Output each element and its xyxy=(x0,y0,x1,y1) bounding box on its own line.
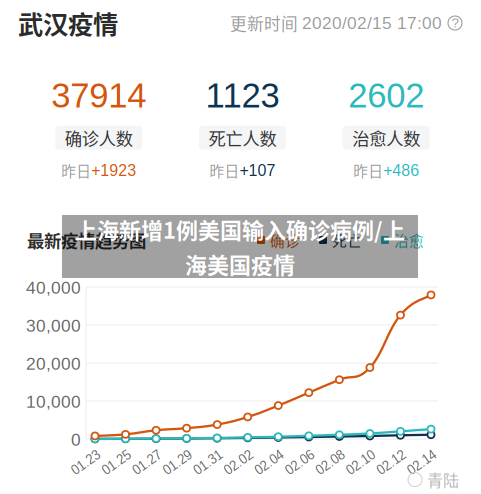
button[interactable]: 37914 xyxy=(51,76,146,181)
staticText: 武汉疫情 xyxy=(18,5,118,41)
staticText: 更新时间 xyxy=(230,11,298,35)
staticText: 37914 xyxy=(51,76,146,115)
button[interactable]: 1123 xyxy=(199,76,286,181)
staticText: 2020/02/15 17:00 xyxy=(302,13,442,33)
staticText: 昨日 xyxy=(209,160,239,181)
staticText: 海美国疫情 xyxy=(185,248,295,280)
staticText: 20,000 xyxy=(26,354,81,373)
staticText: 01.27 xyxy=(131,456,163,470)
staticText: 02.14 xyxy=(406,456,438,470)
staticText: 02.04 xyxy=(253,456,285,470)
staticText: 02.02 xyxy=(223,456,255,470)
button[interactable]: 武汉疫情 xyxy=(18,5,118,41)
staticText: +486 xyxy=(383,161,419,179)
staticText: 01.29 xyxy=(162,456,194,470)
staticText: 昨日 xyxy=(61,160,91,181)
staticText: 2602 xyxy=(348,76,424,115)
staticText: 青陆 xyxy=(427,468,459,491)
staticText: 10,000 xyxy=(26,392,81,411)
staticText: 02.10 xyxy=(345,456,377,470)
staticText: 01.23 xyxy=(70,456,102,470)
staticText: +107 xyxy=(239,161,275,179)
staticText: +1923 xyxy=(91,161,136,179)
staticText: 02.12 xyxy=(375,456,407,470)
staticText: 治愈人数 xyxy=(352,125,420,150)
button[interactable]: 2602 xyxy=(343,76,430,181)
staticText: 02.06 xyxy=(284,456,316,470)
staticText: 确诊人数 xyxy=(65,125,133,150)
staticText: 昨日 xyxy=(353,160,383,181)
staticText: 死亡人数 xyxy=(208,125,276,150)
staticText: 01.25 xyxy=(100,456,132,470)
staticText: 30,000 xyxy=(26,316,81,335)
staticText: 治愈 xyxy=(394,229,424,251)
staticText: ? xyxy=(451,16,458,30)
staticText: 最新疫情趋势图 xyxy=(27,227,146,253)
button[interactable]: 更新时间 xyxy=(230,11,462,35)
staticText: 02.08 xyxy=(314,456,346,470)
staticText: 上海新增1例美国输入确诊病例/上 xyxy=(75,213,405,245)
staticText: 确诊 xyxy=(270,229,300,251)
staticText: 40,000 xyxy=(26,278,81,297)
staticText: 1123 xyxy=(205,76,279,115)
staticText: 01.31 xyxy=(192,456,224,470)
staticText: 0 xyxy=(71,430,81,449)
staticText: 死亡 xyxy=(332,229,362,251)
